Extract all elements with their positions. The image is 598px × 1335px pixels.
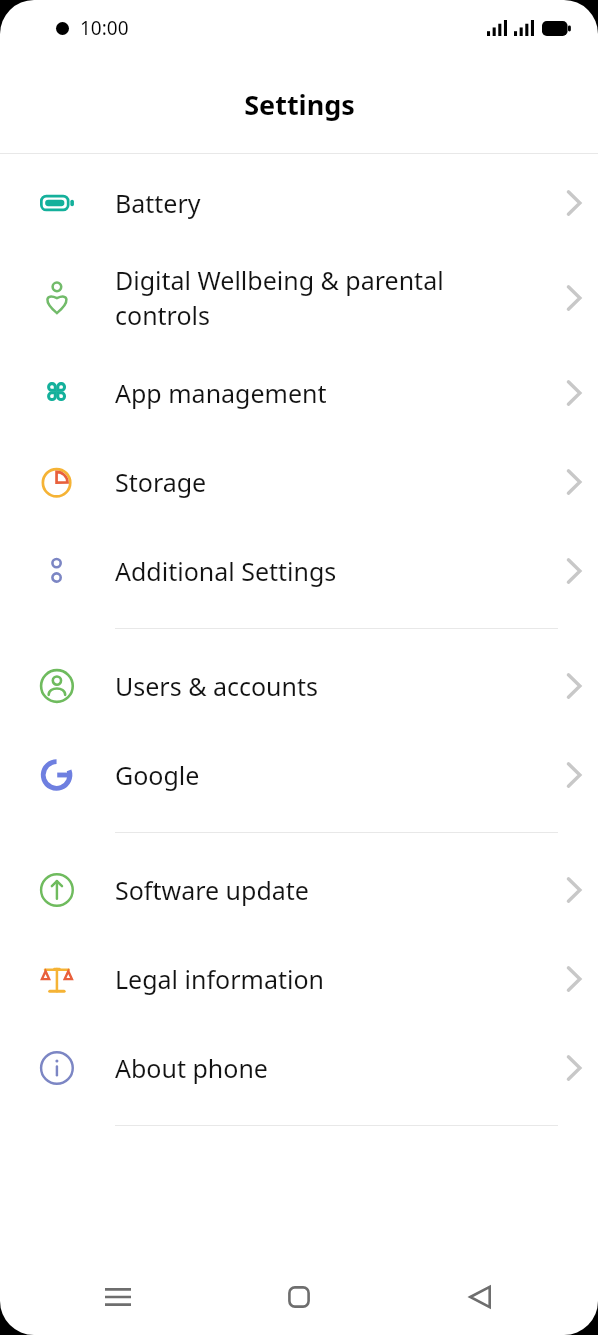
staticText: Battery [115,186,532,220]
staticText: Google [115,758,532,792]
staticText: Users & accounts [115,669,532,703]
button[interactable]: App management [0,348,598,437]
button[interactable]: Battery [0,158,598,247]
staticText: Software update [115,873,532,907]
staticText: Legal information [115,962,532,996]
button[interactable]: Home [208,1259,389,1335]
button[interactable]: Recent apps [28,1259,208,1335]
staticText: Storage [115,465,532,499]
button[interactable]: Legal information [0,934,598,1023]
button[interactable]: Digital Wellbeing & parental controls [0,247,598,348]
button[interactable]: Software update [0,845,598,934]
staticText: 10:00 [80,15,129,41]
staticText: Additional Settings [115,554,532,588]
staticText: App management [115,376,532,410]
staticText: Settings [244,86,355,123]
button[interactable]: Google [0,730,598,819]
button[interactable]: About phone [0,1023,598,1112]
staticText: About phone [115,1051,532,1085]
button[interactable]: Users & accounts [0,641,598,730]
button[interactable]: Additional Settings [0,526,598,615]
button[interactable]: Storage [0,437,598,526]
staticText: Digital Wellbeing & parental controls [115,263,532,333]
button[interactable]: Back [389,1259,570,1335]
